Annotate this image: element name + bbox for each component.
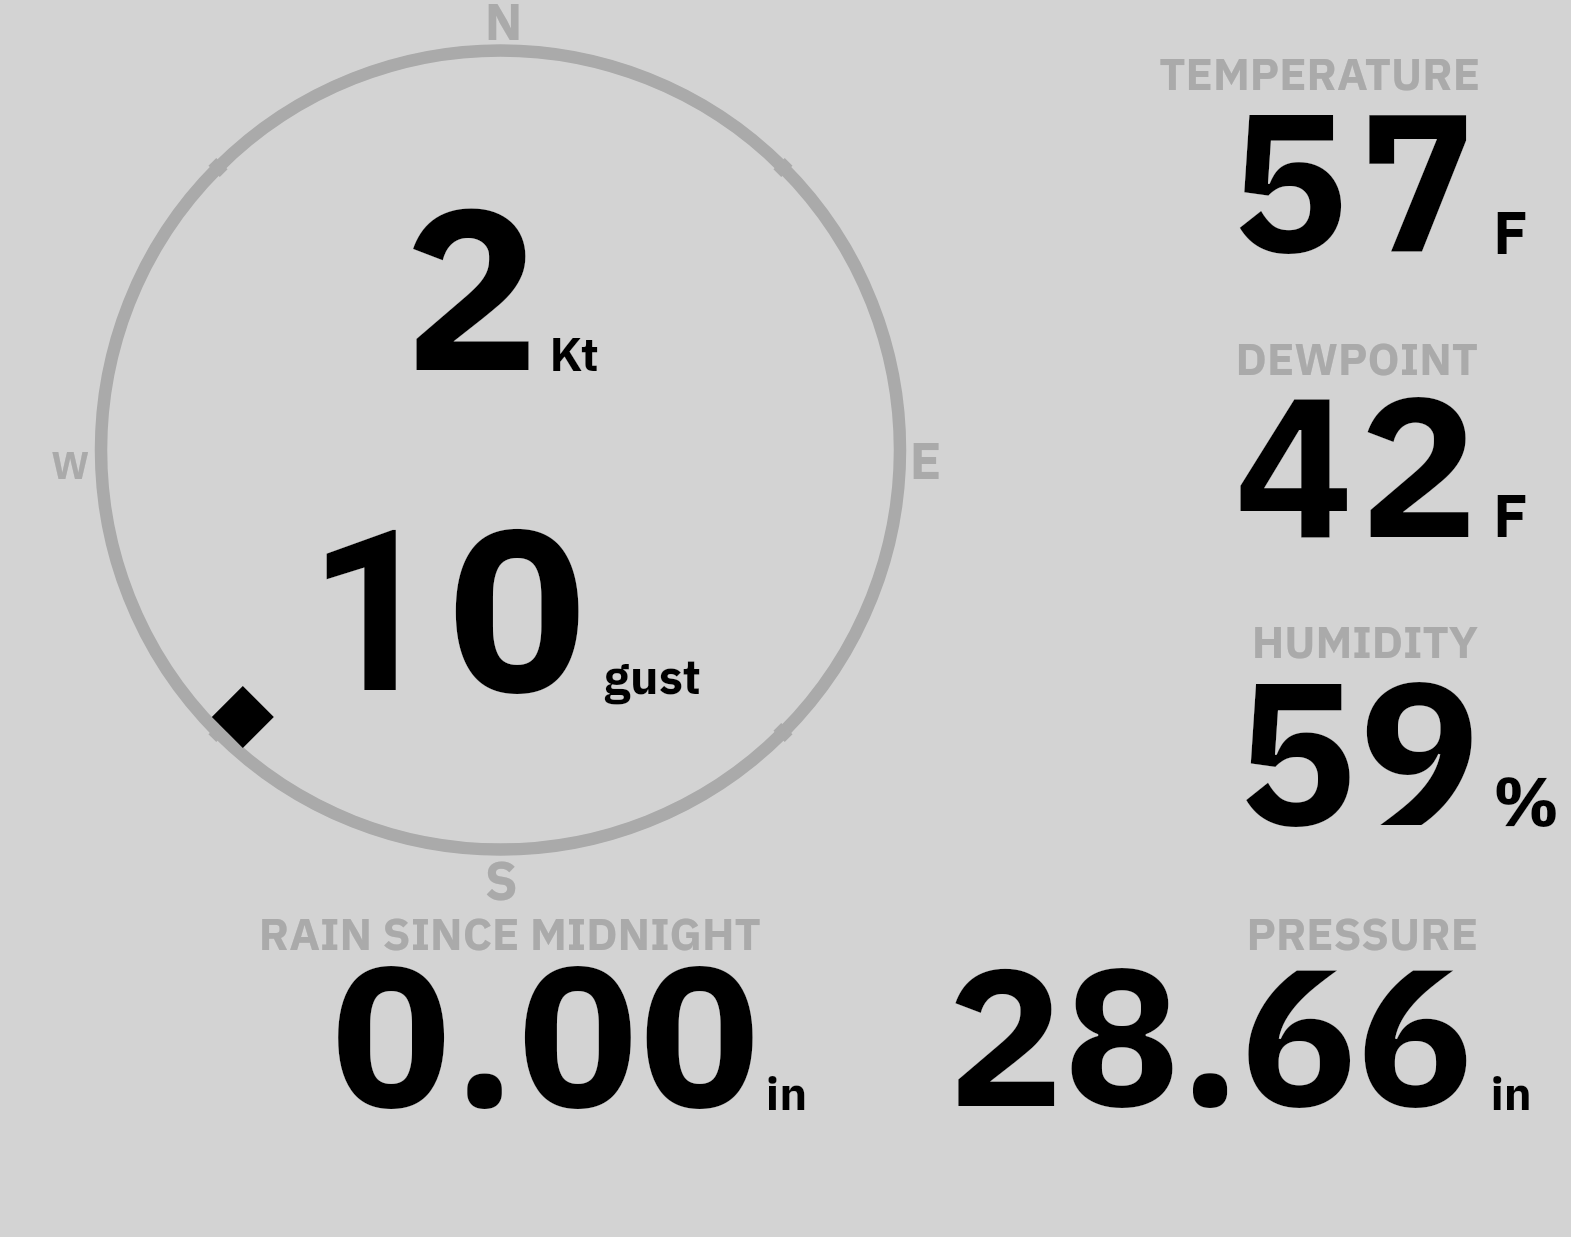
button[interactable]: Rain since midnight 0.00 in bbox=[180, 905, 820, 1135]
button[interactable]: Wind 2 knots gusting 10, direction south… bbox=[0, 0, 1000, 905]
button[interactable]: Pressure 28.66 in bbox=[900, 905, 1571, 1135]
button[interactable]: Temperature 57 F bbox=[1010, 30, 1571, 280]
button[interactable]: Humidity 59 percent bbox=[1010, 600, 1571, 850]
button[interactable]: Weather station dashboard bbox=[0, 0, 1571, 1237]
button[interactable]: Dewpoint 42 F bbox=[1010, 315, 1571, 565]
